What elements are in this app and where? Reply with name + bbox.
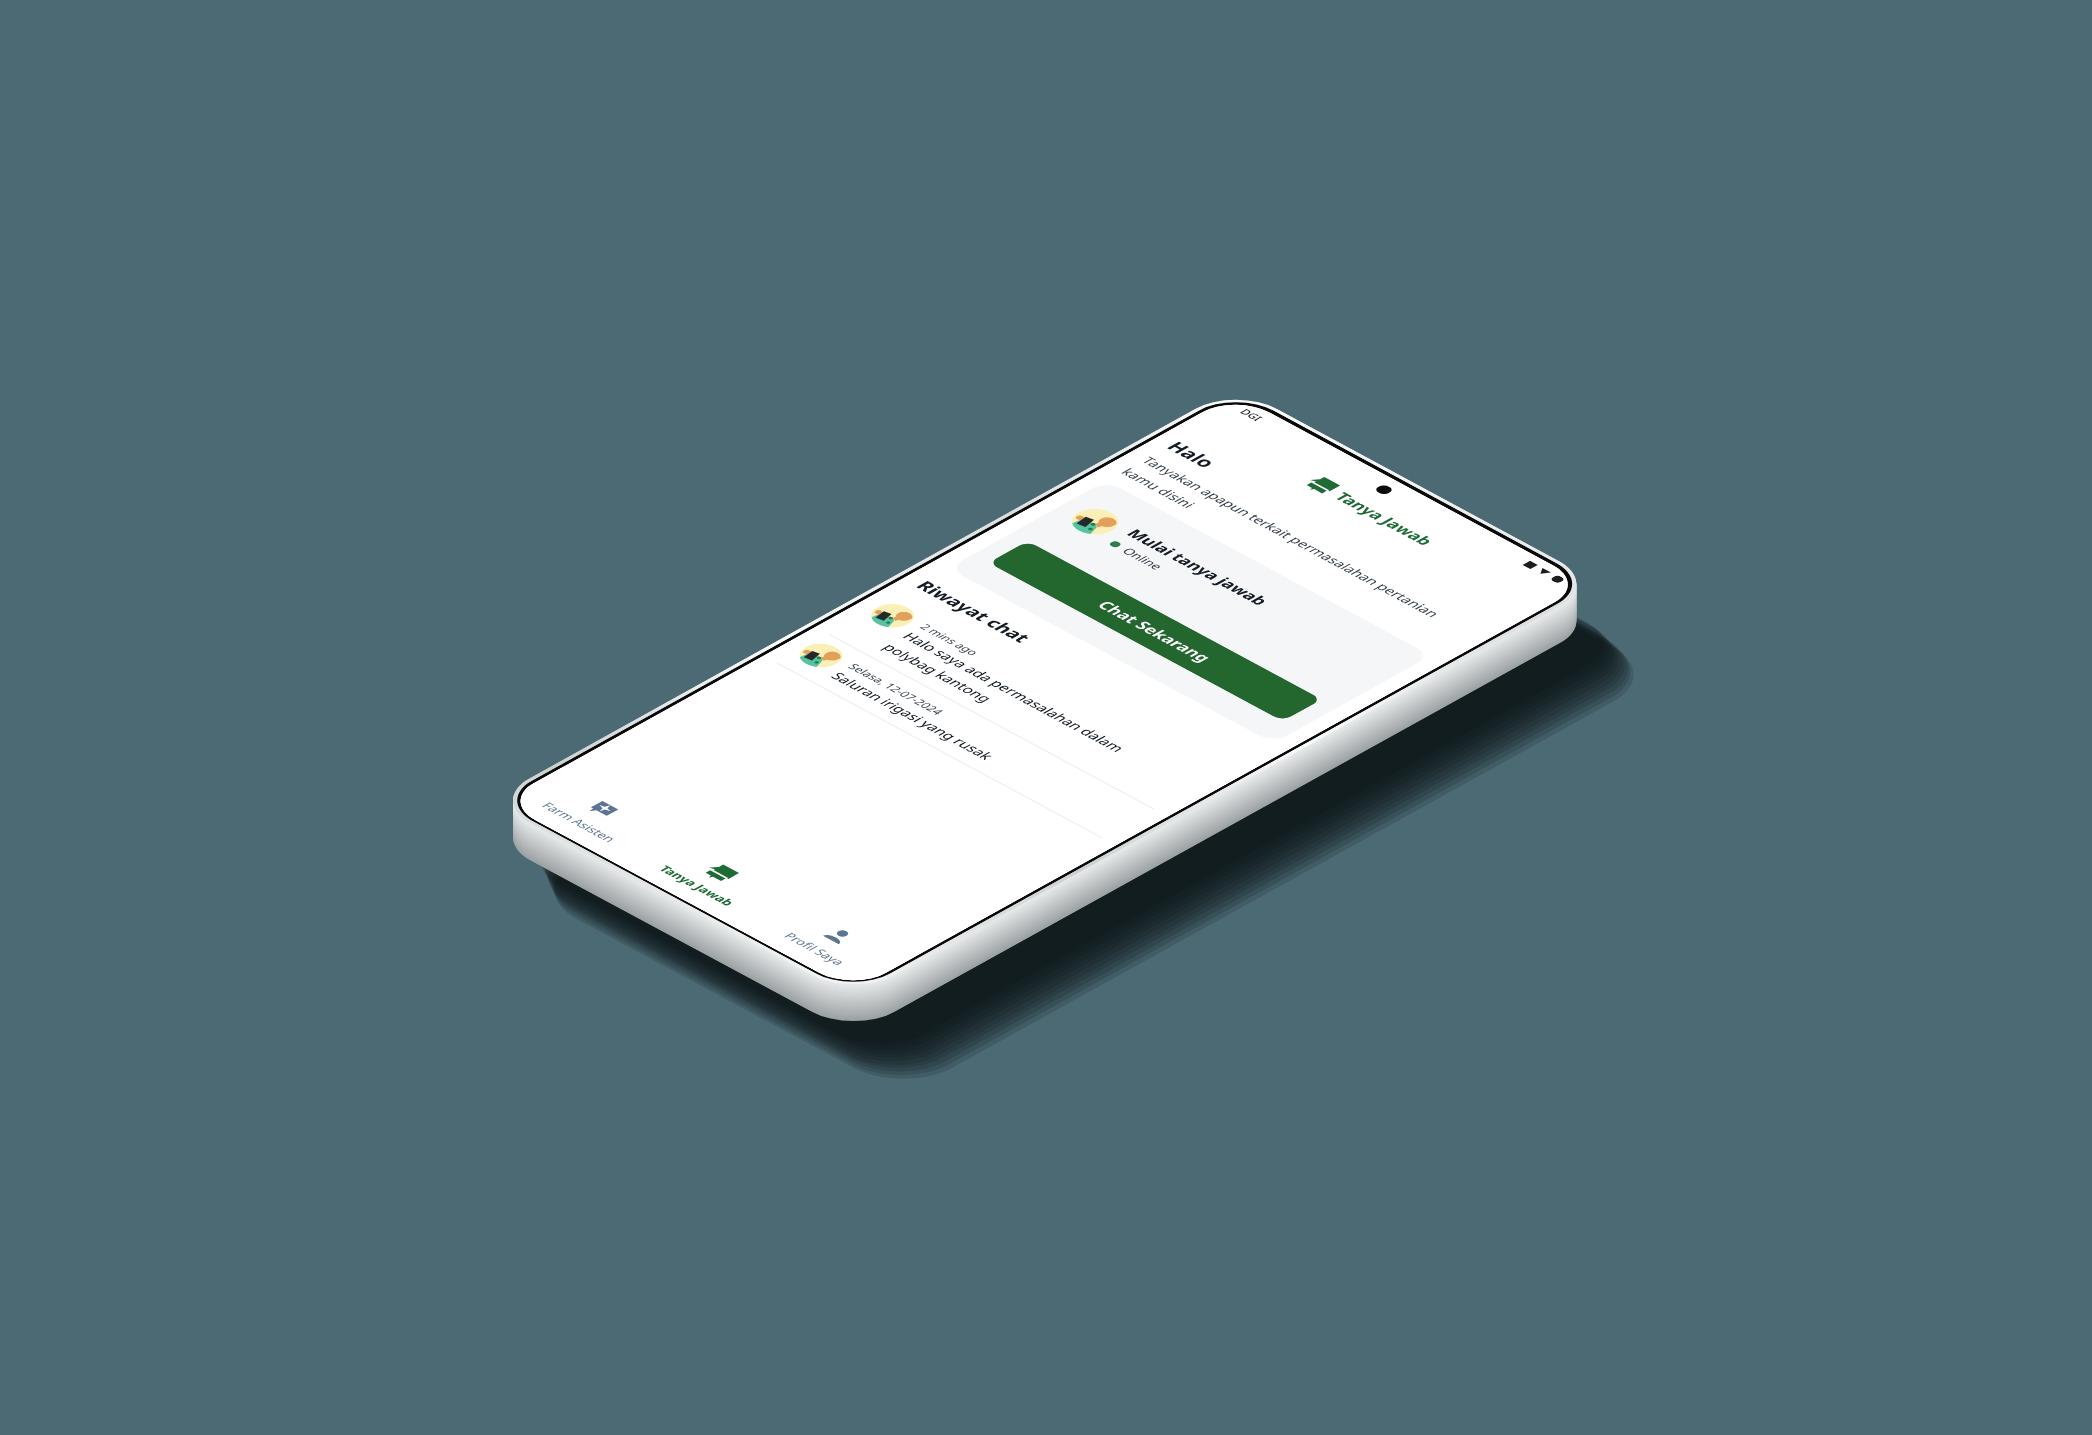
staticText: Halo: [1161, 438, 1222, 471]
staticText: Tanyakan apapun terkait permasalahan per…: [1116, 454, 1479, 650]
staticText: Riwayat chat: [910, 577, 1037, 646]
staticText: Saluran irigasi yang rusak: [827, 669, 999, 762]
button[interactable]: Profil Saya: [736, 893, 916, 991]
staticText: Tanya Jawab: [1330, 489, 1439, 549]
staticText: Selasa, 12-07-2024: [845, 661, 948, 717]
button[interactable]: 2 mins ago: [829, 595, 1225, 809]
staticText: Profil Saya: [780, 930, 849, 968]
staticText: Halo saya ada permasalahan dalam polybag…: [879, 630, 1172, 788]
button[interactable]: Farm Asisten: [500, 767, 681, 865]
staticText: Online: [1118, 545, 1168, 572]
button[interactable]: Tanya Jawab: [1176, 406, 1566, 617]
button[interactable]: Tanya Jawab: [619, 830, 798, 928]
staticText: 2 mins ago: [916, 621, 983, 657]
staticText: Tanya Jawab: [655, 863, 739, 908]
button[interactable]: Selasa, 12-07-2024: [777, 634, 1154, 838]
staticText: Chat Sekarang: [1092, 597, 1217, 665]
staticText: Mulai tanya jawab: [1122, 526, 1274, 608]
staticText: Farm Asisten: [538, 800, 621, 845]
button[interactable]: Chat Sekarang: [988, 541, 1322, 721]
button[interactable]: Mulai tanya jawab: [948, 480, 1431, 743]
staticText: DGI: [1237, 407, 1266, 423]
